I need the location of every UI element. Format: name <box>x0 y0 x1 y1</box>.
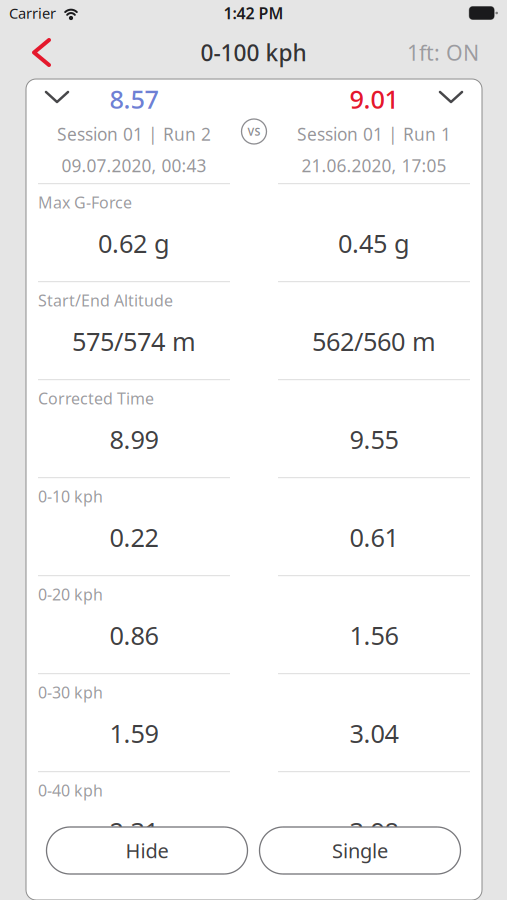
button[interactable]: Collapse left run <box>38 82 80 112</box>
staticText: Corrected Time <box>38 388 154 409</box>
staticText: 1.56 <box>349 618 398 652</box>
staticText: Session 01 | Run 2 <box>57 122 211 145</box>
staticText: VS <box>247 124 260 139</box>
staticText: Session 01 | Run 1 <box>297 122 451 145</box>
staticText: 0.62 g <box>98 226 170 260</box>
staticText: 0-100 kph <box>200 37 306 67</box>
staticText: Hide <box>125 837 168 864</box>
staticText: 0-40 kph <box>38 780 103 801</box>
staticText: 21.06.2020, 17:05 <box>301 154 446 177</box>
staticText: 2.31 <box>109 814 158 848</box>
staticText: Single <box>332 837 388 864</box>
staticText: 0.86 <box>109 618 158 652</box>
staticText: 1.59 <box>109 716 158 750</box>
staticText: 3.98 <box>349 814 398 848</box>
staticText: 1ft: ON <box>407 38 479 67</box>
staticText: Carrier <box>9 3 56 23</box>
staticText: 8.57 <box>109 82 158 116</box>
staticText: 0-30 kph <box>38 682 103 703</box>
button[interactable]: Single <box>259 827 460 874</box>
staticText: 3.04 <box>349 716 398 750</box>
button[interactable]: Back <box>0 27 66 78</box>
staticText: 09.07.2020, 00:43 <box>61 154 206 177</box>
staticText: 0-10 kph <box>38 486 103 507</box>
staticText: Max G-Force <box>38 192 132 213</box>
staticText: 575/574 m <box>72 324 196 358</box>
staticText: 1:42 PM <box>223 2 283 24</box>
staticText: 0.61 <box>349 520 398 554</box>
button[interactable]: Hide <box>46 827 247 874</box>
button[interactable]: 1ft: ON <box>385 25 507 80</box>
button[interactable]: Collapse right run <box>428 82 470 112</box>
staticText: 0-20 kph <box>38 584 103 605</box>
staticText: 562/560 m <box>312 324 436 358</box>
staticText: 9.01 <box>349 82 398 116</box>
staticText: 0.45 g <box>338 226 410 260</box>
staticText: Start/End Altitude <box>38 290 173 311</box>
staticText: 0.22 <box>109 520 158 554</box>
staticText: 8.99 <box>109 422 158 456</box>
staticText: 9.55 <box>349 422 398 456</box>
